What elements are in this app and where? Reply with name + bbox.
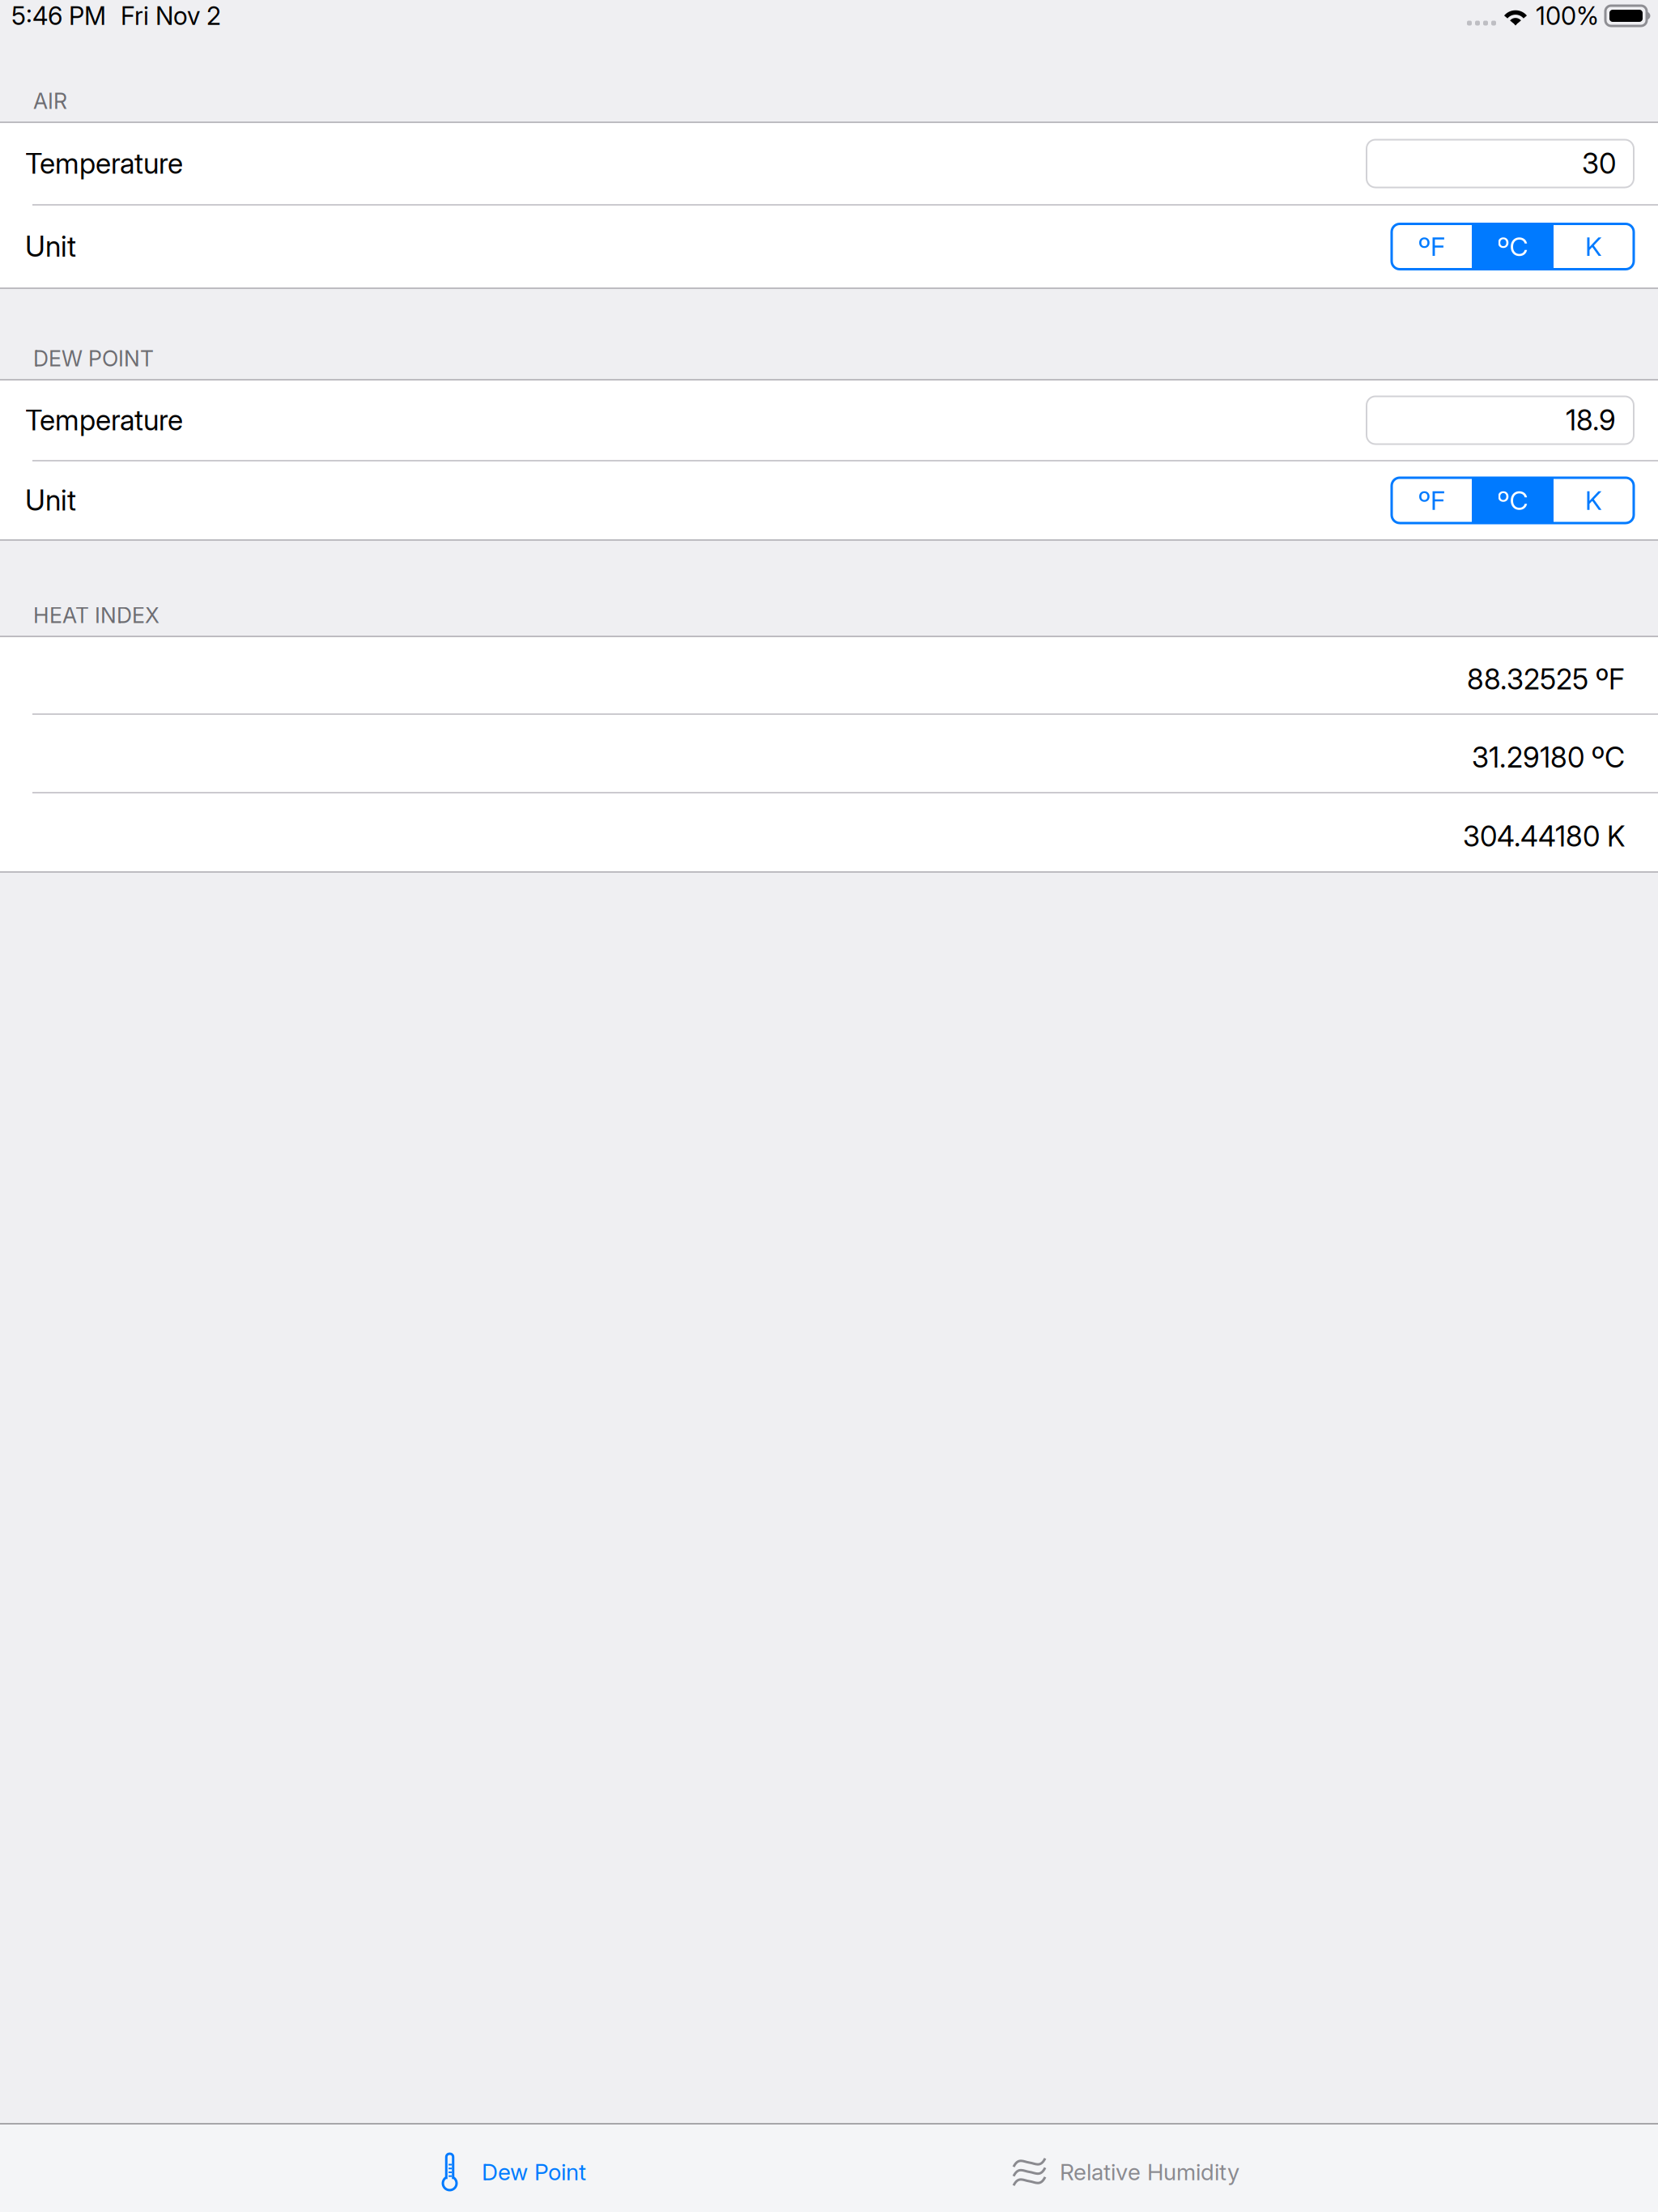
staticText: 100% bbox=[1536, 1, 1599, 31]
button[interactable]: Unit bbox=[0, 462, 1658, 539]
staticText: Temperature bbox=[25, 147, 183, 180]
staticText: 5:46 PM bbox=[11, 1, 106, 31]
staticText: HEAT INDEX bbox=[33, 602, 159, 628]
staticText: ºF bbox=[1418, 231, 1445, 262]
staticText: 88.32525 ºF bbox=[1467, 662, 1625, 696]
button[interactable]: Temperature bbox=[0, 381, 1658, 460]
staticText: ºC bbox=[1497, 485, 1528, 516]
staticText: Unit bbox=[25, 230, 76, 263]
button[interactable]: Unit bbox=[0, 206, 1658, 287]
staticText: ºC bbox=[1497, 231, 1528, 262]
staticText: K bbox=[1585, 231, 1602, 262]
button[interactable]: Temperature bbox=[0, 123, 1658, 204]
staticText: AIR bbox=[33, 88, 67, 114]
staticText: Unit bbox=[25, 483, 76, 517]
button[interactable]: ºF bbox=[1392, 224, 1634, 269]
button[interactable]: Dew Point bbox=[442, 2125, 586, 2212]
staticText: 30 bbox=[1582, 147, 1616, 180]
button[interactable]: Relative Humidity bbox=[1014, 2125, 1239, 2212]
staticText: 304.44180 K bbox=[1463, 819, 1625, 853]
staticText: Temperature bbox=[25, 403, 183, 437]
staticText: K bbox=[1585, 485, 1602, 516]
staticText: Relative Humidity bbox=[1060, 2158, 1239, 2186]
staticText: Fri Nov 2 bbox=[121, 1, 221, 31]
staticText: ºF bbox=[1418, 485, 1445, 516]
button[interactable]: 30 bbox=[1367, 140, 1634, 187]
staticText: Dew Point bbox=[482, 2158, 586, 2186]
button[interactable]: ºF bbox=[1392, 478, 1634, 523]
button[interactable]: 18.9 bbox=[1367, 396, 1634, 444]
staticText: 31.29180 ºC bbox=[1472, 740, 1625, 774]
staticText: 18.9 bbox=[1566, 403, 1616, 437]
staticText: DEW POINT bbox=[33, 345, 154, 372]
